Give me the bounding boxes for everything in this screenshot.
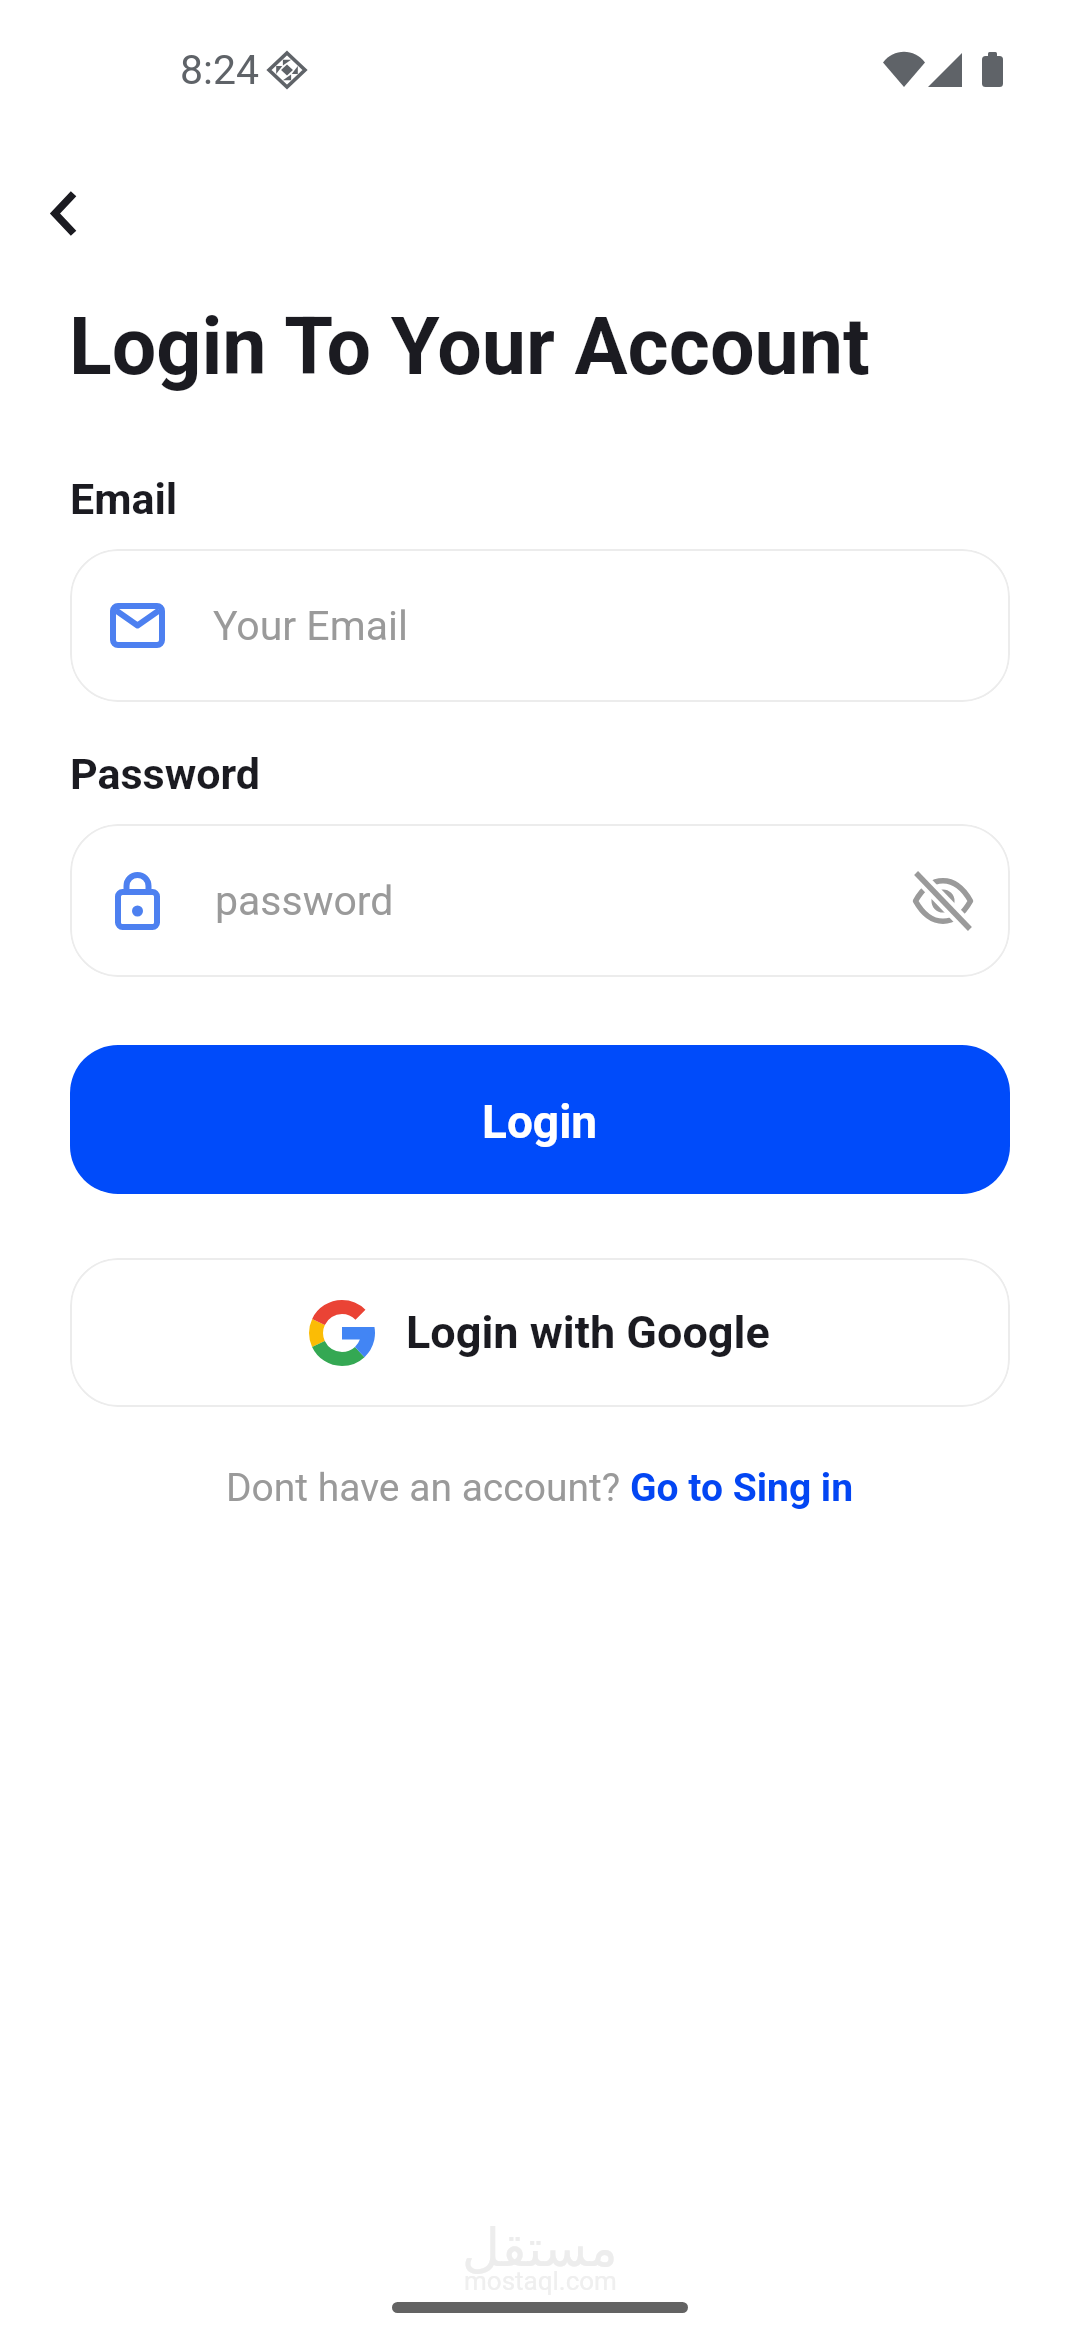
button[interactable]: Your Email xyxy=(70,549,1010,702)
staticText: Email xyxy=(70,474,178,524)
staticText: Login with Google xyxy=(406,1306,770,1359)
button[interactable]: Back xyxy=(17,169,107,259)
button[interactable]: Dont have an account? xyxy=(0,1465,1080,1511)
staticText: password xyxy=(215,877,394,925)
staticText: Login xyxy=(482,1095,598,1149)
staticText: Go to Sing in xyxy=(630,1465,854,1511)
staticText: Your Email xyxy=(213,602,408,650)
staticText: 8:24 xyxy=(180,46,260,94)
staticText: Password xyxy=(70,749,261,799)
button[interactable]: Login xyxy=(70,1045,1010,1194)
staticText: mostaql.com xyxy=(464,2266,617,2296)
button[interactable]: password xyxy=(70,824,1010,977)
button[interactable]: Show password xyxy=(901,859,985,943)
staticText: مستقل xyxy=(462,2218,618,2279)
button[interactable]: Login with Google xyxy=(70,1258,1010,1407)
staticText: Dont have an account? xyxy=(226,1465,630,1511)
staticText: Login To Your Account xyxy=(69,301,870,394)
